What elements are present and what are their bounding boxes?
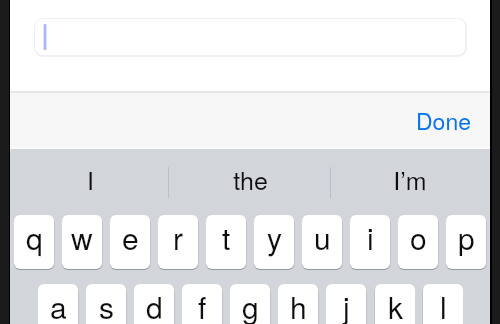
button[interactable]: g — [230, 284, 270, 324]
button[interactable]: p — [446, 215, 486, 269]
button[interactable]: y — [254, 215, 294, 269]
staticText: f — [198, 285, 207, 324]
staticText: i — [367, 216, 374, 259]
button[interactable]: e — [110, 215, 150, 269]
button[interactable]: h — [278, 284, 318, 324]
button[interactable]: l — [423, 284, 463, 324]
staticText: w — [71, 216, 93, 259]
staticText: y — [267, 216, 282, 259]
staticText: r — [173, 216, 183, 259]
staticText: a — [50, 285, 67, 324]
button[interactable]: i — [350, 215, 390, 269]
button[interactable]: I — [10, 152, 170, 196]
staticText: d — [146, 285, 163, 324]
staticText: s — [99, 285, 114, 324]
staticText: t — [222, 216, 231, 259]
staticText: p — [458, 216, 475, 259]
staticText: u — [314, 216, 331, 259]
staticText: g — [242, 285, 259, 324]
button[interactable]: the — [170, 152, 330, 196]
staticText: e — [122, 216, 139, 259]
button[interactable]: Text input field — [34, 18, 467, 57]
staticText: I — [87, 161, 94, 197]
button[interactable]: j — [326, 284, 366, 324]
button[interactable]: d — [134, 284, 174, 324]
button[interactable]: f — [182, 284, 222, 324]
staticText: k — [388, 285, 403, 324]
staticText: I’m — [393, 161, 427, 197]
staticText: j — [343, 285, 350, 324]
button[interactable]: u — [302, 215, 342, 269]
staticText: o — [410, 216, 427, 259]
staticText: h — [290, 285, 307, 324]
button[interactable]: q — [14, 215, 54, 269]
button[interactable]: s — [86, 284, 126, 324]
button[interactable]: I’m — [330, 152, 490, 196]
button[interactable]: t — [206, 215, 246, 269]
button[interactable]: k — [375, 284, 415, 324]
staticText: q — [26, 216, 43, 259]
button[interactable]: Done — [405, 103, 481, 137]
button[interactable]: w — [62, 215, 102, 269]
staticText: Done — [416, 104, 471, 137]
staticText: l — [440, 285, 447, 324]
button[interactable]: a — [38, 284, 78, 324]
staticText: the — [233, 161, 268, 197]
button[interactable]: r — [158, 215, 198, 269]
button[interactable]: o — [398, 215, 438, 269]
